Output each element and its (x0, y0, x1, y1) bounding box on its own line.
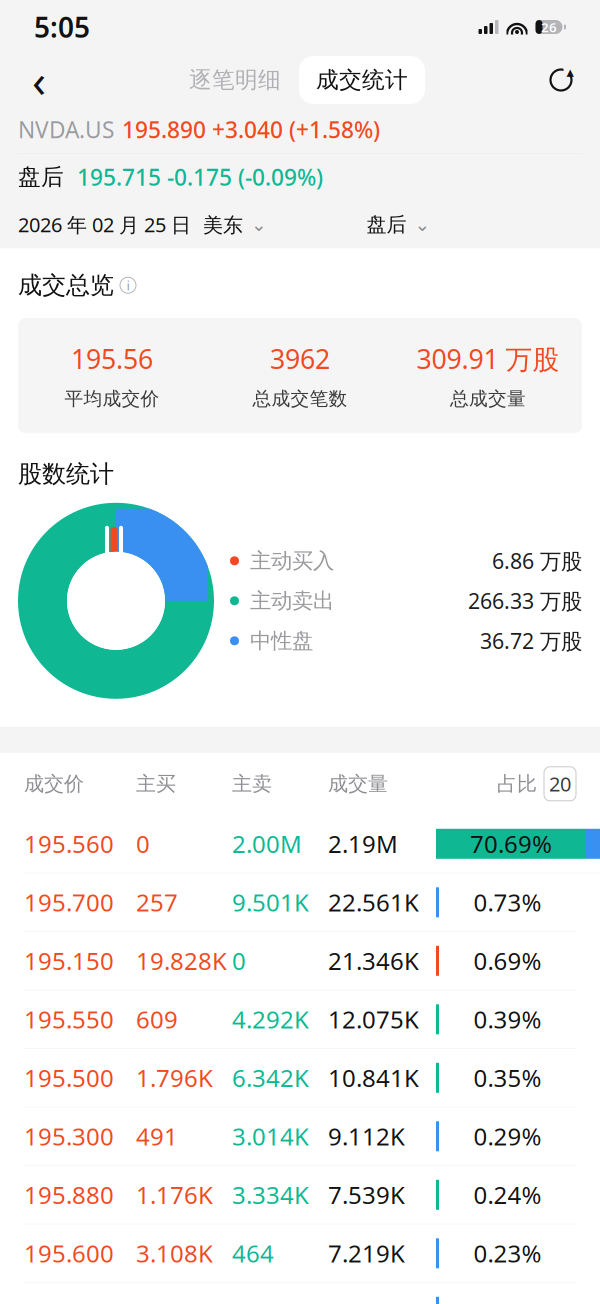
staticText: 5:05 (34, 8, 90, 46)
staticText: 2026 年 02 月 25 日 美东 (18, 211, 243, 238)
staticText: 成交价 (24, 771, 84, 796)
staticText: 3.108K (136, 1237, 213, 1269)
staticText: 195.890 +3.040 (+1.58%) (122, 114, 380, 144)
staticText: 3.014K (232, 1120, 309, 1152)
staticText: 9.112K (328, 1120, 405, 1152)
staticText: 20 (549, 770, 571, 797)
staticText: 1.796K (136, 1062, 213, 1094)
button[interactable]: 盘后 (366, 202, 430, 247)
staticText: 2.00M (232, 828, 302, 860)
staticText: 9.501K (232, 886, 309, 918)
staticText: NVDA.US (18, 114, 114, 144)
staticText: 0.35% (473, 1062, 541, 1094)
button[interactable]: 195.300 (0, 1107, 600, 1166)
button[interactable]: 195.700 (0, 873, 600, 932)
staticText: 逐笔明细 (189, 66, 281, 94)
staticText: 266.33 万股 (468, 587, 582, 615)
staticText: 股数统计 (18, 459, 114, 489)
staticText: ⌄ (414, 214, 430, 235)
button[interactable]: 2026 年 02 月 25 日 美东 (18, 201, 267, 248)
button[interactable]: 成交统计 (299, 56, 425, 104)
button[interactable]: 195.500 (0, 1049, 600, 1107)
staticText: 195.700 (24, 886, 114, 918)
staticText: ▴ (566, 64, 573, 80)
staticText: 主动买入 (250, 548, 334, 574)
button[interactable]: Refresh (538, 57, 584, 103)
staticText: 195.560 (24, 828, 114, 860)
staticText: 主动卖出 (250, 588, 334, 614)
staticText: 0.29% (473, 1120, 541, 1152)
staticText: 7.539K (328, 1179, 405, 1211)
button[interactable]: 显示档数 20 (544, 767, 576, 801)
staticText: 22.561K (328, 886, 419, 918)
staticText: 36.72 万股 (480, 627, 582, 655)
staticText: 6.86 万股 (492, 547, 582, 575)
button[interactable]: 195.150 (0, 932, 600, 990)
staticText: 257 (136, 886, 178, 918)
staticText: 19.828K (136, 945, 227, 977)
staticText: 195.150 (24, 945, 114, 977)
staticText: 0.23% (473, 1237, 541, 1269)
staticText: 中性盘 (250, 628, 313, 654)
staticText: 总成交量 (450, 387, 526, 410)
staticText: 3.334K (232, 1179, 309, 1211)
staticText: 0.73% (473, 886, 541, 918)
staticText: 0 (136, 828, 150, 860)
button[interactable]: 195.560 (0, 815, 600, 873)
staticText: 成交总览 (18, 270, 114, 300)
button[interactable]: 195.600 (0, 1224, 600, 1283)
staticText: 0.69% (473, 945, 541, 977)
staticText: 主买 (136, 771, 176, 796)
staticText: 195.880 (24, 1179, 114, 1211)
staticText: 7.219K (328, 1237, 405, 1269)
staticText: 491 (136, 1120, 178, 1152)
staticText: 26 (541, 18, 557, 36)
button[interactable]: 195.550 (0, 990, 600, 1049)
staticText: 0 (232, 945, 246, 977)
button[interactable]: 成交总览说明 (120, 277, 136, 293)
staticText: 总成交笔数 (252, 387, 347, 410)
staticText: 464 (232, 1237, 274, 1269)
staticText: 1.176K (136, 1179, 213, 1211)
staticText: 2.19M (328, 828, 398, 860)
staticText: i (126, 276, 129, 294)
staticText: 195.550 (24, 1003, 114, 1035)
staticText: 占比 (497, 771, 537, 796)
staticText: 6.342K (232, 1062, 309, 1094)
staticText: 195.500 (24, 1062, 114, 1094)
button[interactable]: 逐笔明细 (175, 57, 295, 103)
staticText: 10.841K (328, 1062, 419, 1094)
staticText: 0.39% (473, 1003, 541, 1035)
staticText: 成交量 (328, 771, 388, 796)
staticText: 195.715 -0.175 (-0.09%) (77, 162, 323, 192)
staticText: 平均成交价 (64, 387, 159, 410)
button[interactable]: 195.880 (0, 1166, 600, 1224)
staticText: 609 (136, 1003, 178, 1035)
staticText: 195.56 (71, 341, 153, 376)
staticText: 195.600 (24, 1237, 114, 1269)
staticText: 3962 (270, 341, 330, 376)
staticText: 成交统计 (316, 66, 408, 94)
button[interactable]: Back (16, 57, 62, 103)
staticText: 盘后 (366, 212, 406, 237)
staticText: 4.292K (232, 1003, 309, 1035)
staticText: 70.69% (470, 828, 552, 860)
button[interactable]: 195.510 (0, 1283, 600, 1304)
staticText: 12.075K (328, 1003, 419, 1035)
staticText: 0.24% (473, 1179, 541, 1211)
staticText: 21.346K (328, 945, 419, 977)
staticText: 盘后 (18, 163, 64, 191)
staticText: ‹ (32, 50, 46, 110)
staticText: ⌄ (251, 214, 267, 235)
staticText: 309.91 万股 (416, 341, 559, 376)
staticText: 主卖 (232, 771, 272, 796)
staticText: 195.300 (24, 1120, 114, 1152)
